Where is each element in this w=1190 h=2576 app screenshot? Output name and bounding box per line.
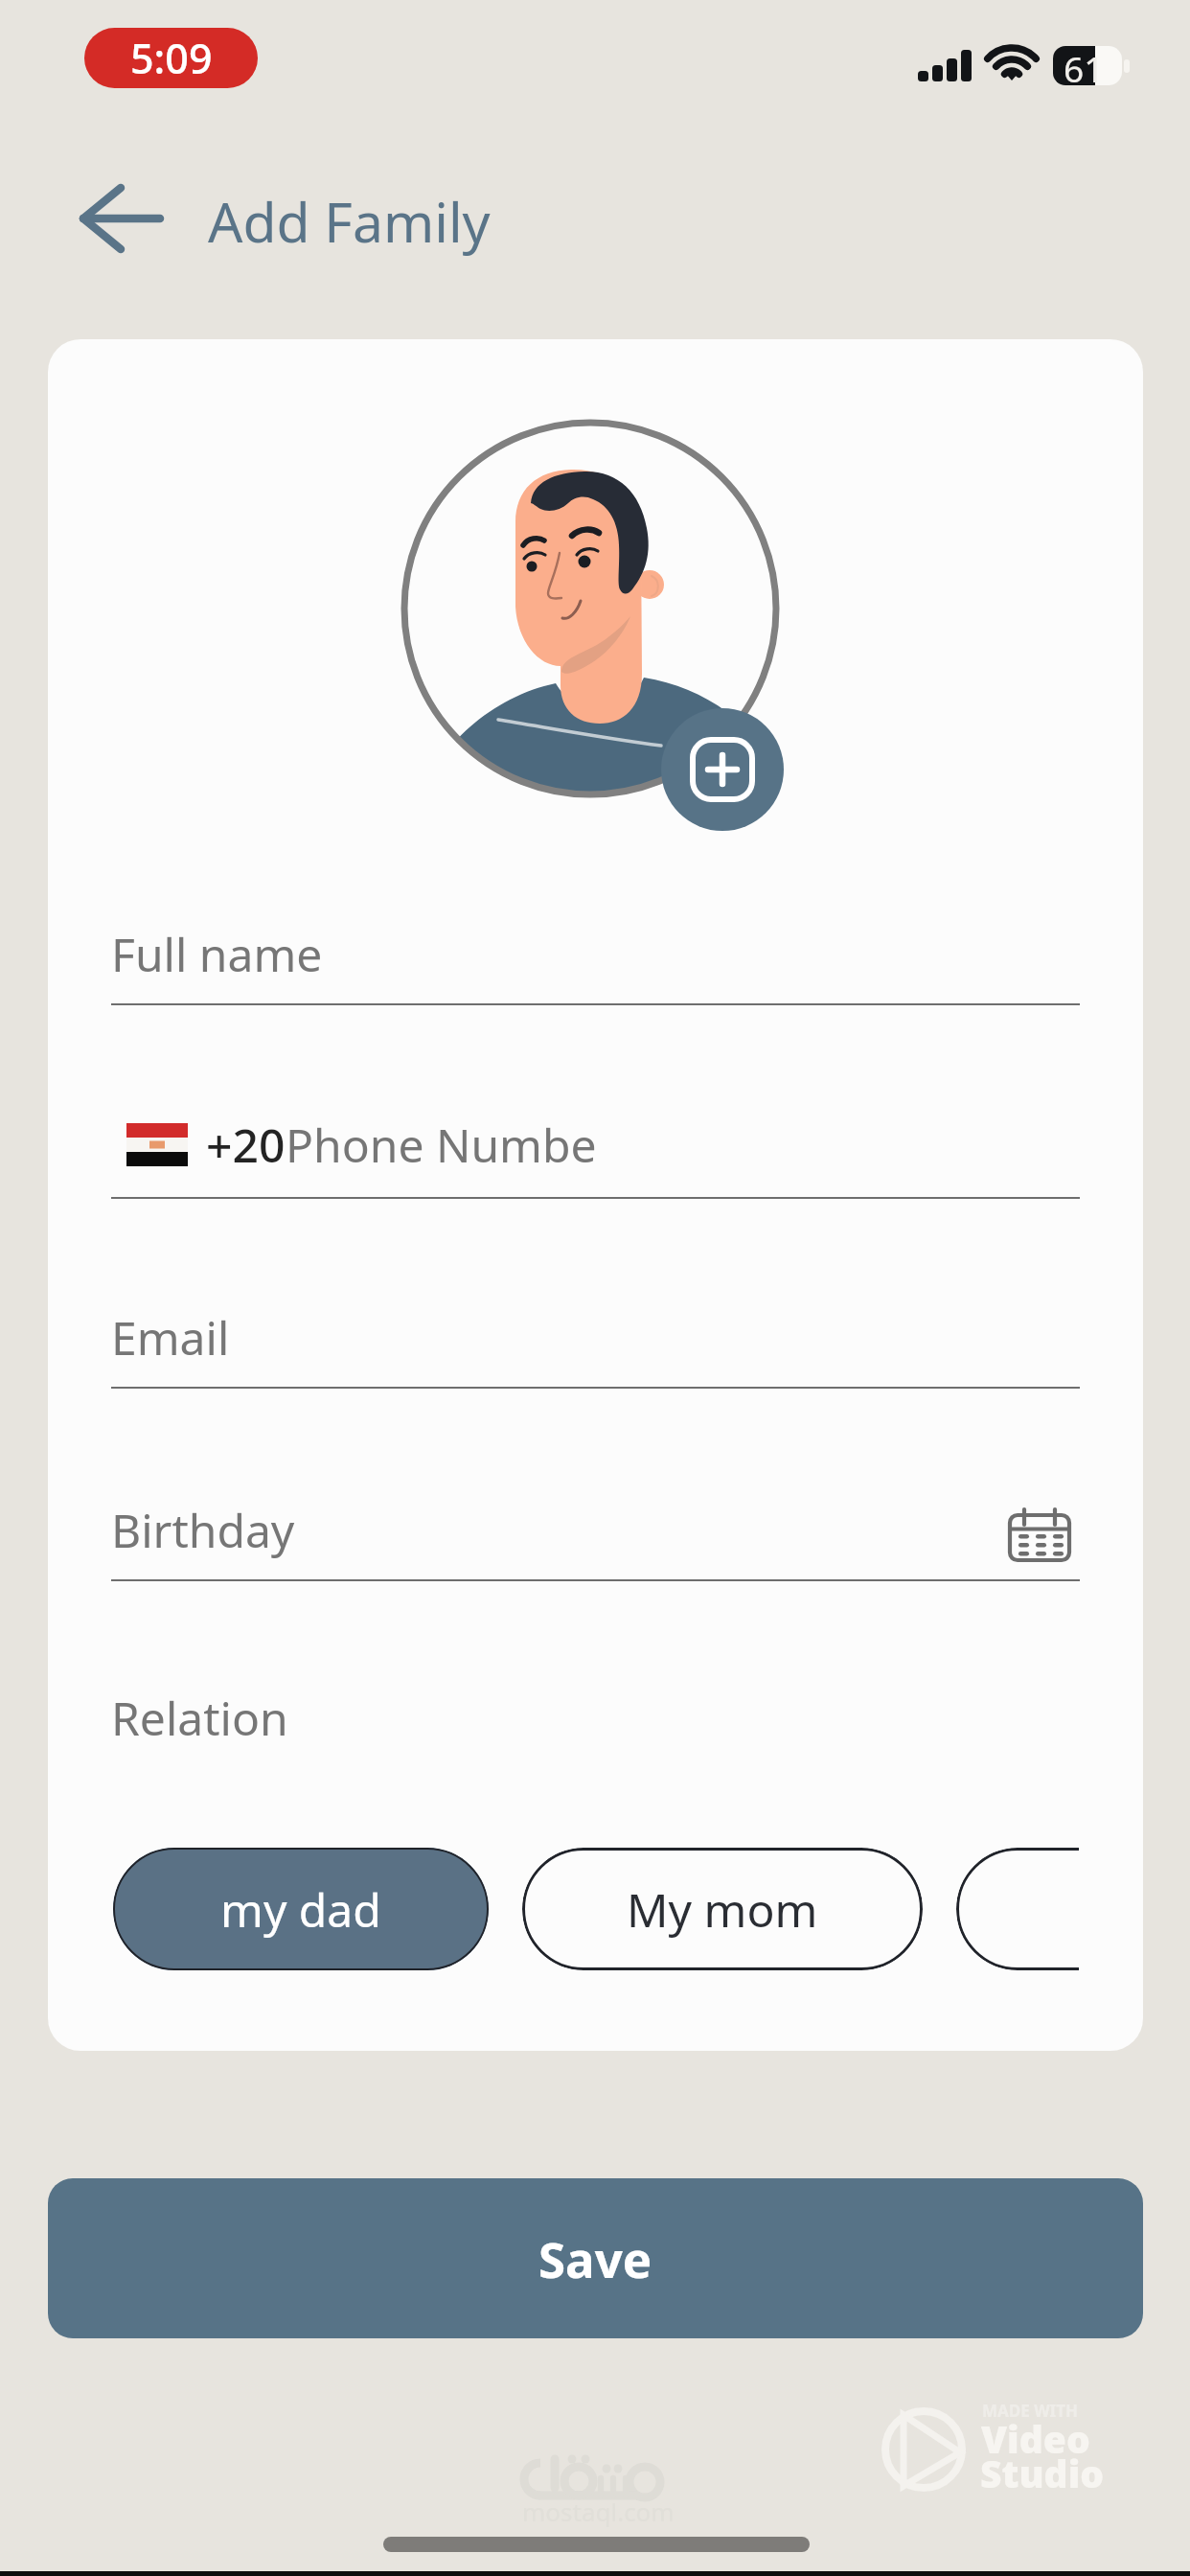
button[interactable]: +20: [111, 1114, 1080, 1203]
staticText: 61: [1064, 44, 1105, 92]
staticText: Save: [538, 2225, 652, 2291]
staticText: Studio: [980, 2448, 1105, 2498]
staticText: Email: [111, 1306, 230, 1368]
staticText: Birthday: [111, 1499, 295, 1561]
button[interactable]: Back: [67, 171, 174, 266]
button[interactable]: [956, 1848, 1079, 1970]
staticText: my dad: [220, 1878, 381, 1941]
staticText: MADE WITH: [982, 2400, 1079, 2422]
other: Pick date: [1007, 1508, 1074, 1564]
button[interactable]: Full name: [111, 923, 1080, 1009]
staticText: +20: [206, 1114, 286, 1176]
staticText: Relation: [111, 1687, 288, 1749]
staticText: Add Family: [208, 184, 491, 259]
button[interactable]: Save: [48, 2178, 1143, 2338]
button[interactable]: My mom: [522, 1848, 923, 1970]
button[interactable]: Add photo: [661, 708, 784, 831]
button[interactable]: Birthday: [111, 1499, 1080, 1585]
staticText: Full name: [111, 923, 323, 985]
staticText: 5:09: [130, 30, 213, 86]
staticText: Phone Numbe: [286, 1114, 597, 1176]
staticText: My mom: [627, 1878, 818, 1941]
button[interactable]: Add Family: [208, 183, 491, 260]
button[interactable]: my dad: [113, 1848, 489, 1970]
button[interactable]: Email: [111, 1306, 1080, 1392]
staticText: Video: [981, 2413, 1090, 2464]
staticText: mostaql.com: [522, 2495, 675, 2528]
